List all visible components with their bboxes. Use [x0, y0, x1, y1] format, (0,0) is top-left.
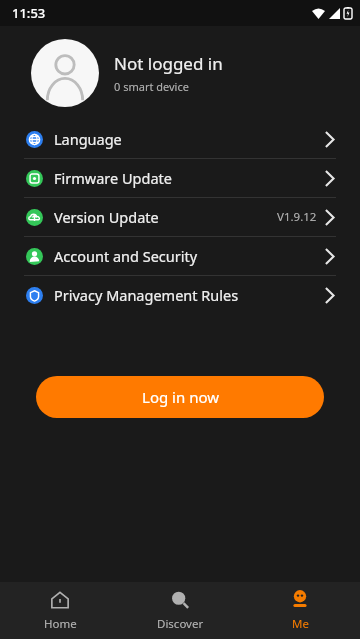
button[interactable]: Privacy Management Rules	[0, 276, 360, 314]
staticText: Discover	[157, 616, 204, 632]
staticText: 11:53	[12, 4, 46, 22]
staticText: Language	[54, 129, 122, 149]
staticText: 0 smart device	[114, 79, 189, 94]
staticText: Firmware Update	[54, 168, 172, 188]
button[interactable]: Log in now	[36, 376, 324, 418]
staticText: Account and Security	[54, 246, 198, 266]
button[interactable]: Me	[240, 582, 360, 639]
staticText: Me	[292, 616, 309, 632]
staticText: Log in now	[142, 387, 219, 407]
staticText: V1.9.12	[277, 209, 317, 225]
button[interactable]: Not logged in	[0, 26, 360, 120]
button[interactable]: Version Update	[0, 198, 360, 236]
staticText: Not logged in	[114, 52, 223, 75]
button[interactable]: Home	[0, 582, 120, 639]
staticText: Privacy Management Rules	[54, 285, 239, 305]
staticText: Home	[44, 616, 77, 632]
staticText: Version Update	[54, 207, 159, 227]
button[interactable]: Language	[0, 120, 360, 158]
button[interactable]: Firmware Update	[0, 159, 360, 197]
button[interactable]: Account and Security	[0, 237, 360, 275]
button[interactable]: Discover	[120, 582, 240, 639]
